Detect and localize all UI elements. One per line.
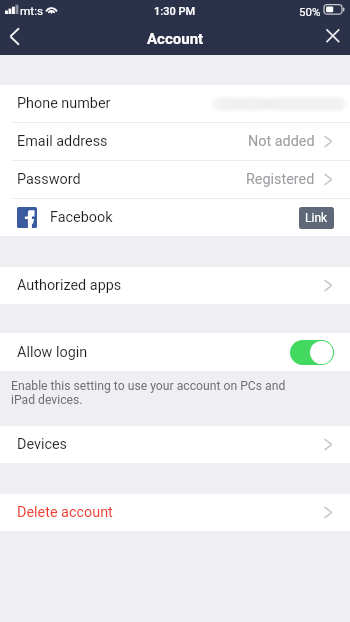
button[interactable]: Delete account [0,494,350,531]
staticText: Registered [246,171,315,188]
button[interactable]: Link [299,207,334,229]
button[interactable]: Email address [0,123,350,160]
staticText: Enable this setting to use your account … [11,379,290,407]
button[interactable]: Phone number [0,85,350,122]
staticText: Devices [17,436,68,453]
button[interactable]: Authorized apps [0,267,350,304]
staticText: Password [17,171,81,188]
button[interactable]: Back [0,22,32,55]
staticText: Facebook [50,209,113,226]
button[interactable]: Allow login toggle [290,340,334,365]
staticText: Link [305,211,328,225]
staticText: Account [147,30,204,48]
button[interactable]: Facebook [0,199,350,236]
button[interactable]: Devices [0,426,350,463]
staticText: 50% [299,5,321,18]
button[interactable]: Password [0,161,350,198]
staticText: Email address [17,133,108,150]
staticText: Authorized apps [17,277,122,294]
staticText: Delete account [17,504,113,521]
staticText: Not added [248,133,315,150]
staticText: Phone number [17,95,111,112]
staticText: Allow login [17,344,88,361]
button[interactable]: Allow login [0,333,350,371]
staticText: 1:30 PM [154,5,196,18]
staticText: mt:s [20,4,44,18]
button[interactable]: Close [318,22,350,55]
